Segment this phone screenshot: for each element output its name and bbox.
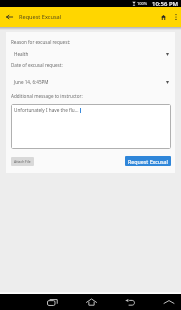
button[interactable]: Back [2, 10, 16, 24]
button[interactable]: Health [11, 51, 171, 57]
button[interactable]: Home [156, 7, 170, 27]
button[interactable]: More options [170, 7, 181, 27]
staticText: Request Excusal [19, 13, 62, 21]
staticText: 10:56 PM [152, 0, 179, 7]
button[interactable]: Unfortunately I have the flu... [11, 104, 171, 149]
button[interactable]: Recent apps [43, 294, 61, 310]
button[interactable]: Request Excusal [125, 156, 171, 166]
staticText: Additional message to instructor: [11, 93, 83, 99]
staticText: June 14, 6:45PM [14, 79, 49, 85]
staticText: Health [14, 51, 29, 57]
staticText: 100% [137, 1, 148, 6]
staticText: Reason for excusal request: [11, 39, 71, 45]
staticText: Attach File [14, 159, 31, 164]
button[interactable]: June 14, 6:45PM [11, 79, 171, 85]
staticText: Date of excusal request: [11, 62, 63, 68]
staticText: Unfortunately I have the flu... [14, 107, 79, 113]
button[interactable]: Back [121, 294, 139, 310]
staticText: Request Excusal [128, 158, 168, 165]
button[interactable]: Home [82, 294, 100, 310]
button[interactable]: Show keyboard [160, 294, 178, 310]
button[interactable]: Attach File [11, 157, 34, 166]
